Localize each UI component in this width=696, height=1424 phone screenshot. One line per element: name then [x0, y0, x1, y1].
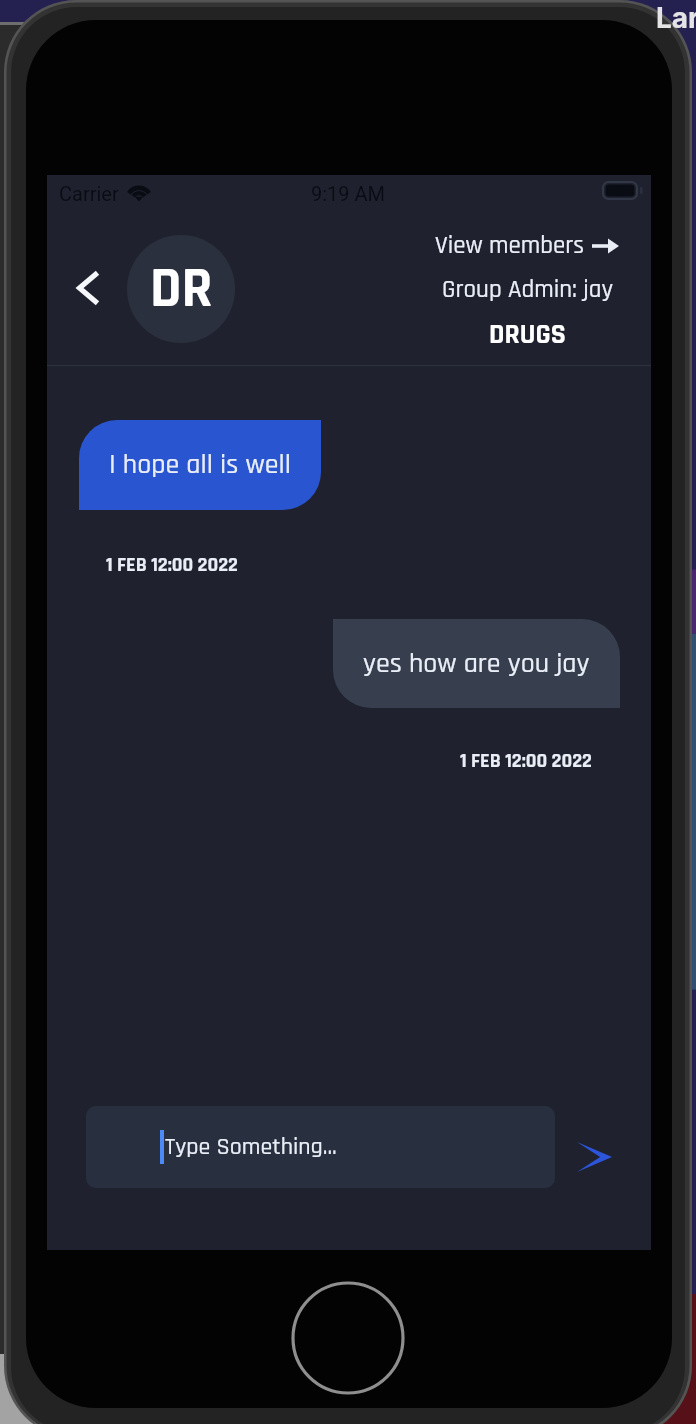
staticText: DR [150, 253, 213, 326]
button[interactable]: View members [411, 228, 643, 263]
staticText: 1 FEB 12:00 2022 [460, 748, 592, 774]
staticText: DRUGS [489, 317, 566, 352]
button[interactable]: Back [55, 256, 119, 320]
staticText: Type Something... [165, 1132, 337, 1163]
button[interactable]: yes how are you jay [333, 619, 620, 708]
button[interactable]: I hope all is well [79, 420, 321, 510]
staticText: Group Admin: jay [442, 274, 613, 306]
staticText: Lar [656, 1, 696, 35]
staticText: 9:19 AM [311, 182, 386, 205]
staticText: View members [435, 230, 585, 262]
staticText: yes how are you jay [363, 646, 590, 682]
staticText: I hope all is well [109, 447, 291, 483]
staticText: Carrier [59, 182, 119, 205]
button[interactable]: Send [560, 1123, 628, 1191]
staticText: 1 FEB 12:00 2022 [106, 552, 238, 578]
button[interactable]: DR [127, 235, 235, 343]
button[interactable]: Type Something... [86, 1106, 555, 1188]
